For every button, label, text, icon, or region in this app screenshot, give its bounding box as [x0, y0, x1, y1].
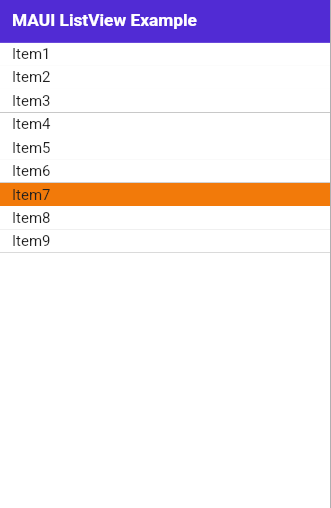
staticText: Item9	[12, 232, 51, 250]
button[interactable]: MAUI ListView Example	[0, 0, 330, 43]
staticText: Item5	[12, 139, 51, 157]
staticText: Item6	[12, 162, 51, 180]
staticText: Item8	[12, 209, 51, 227]
button[interactable]: Item8	[0, 207, 330, 229]
staticText: Item3	[12, 92, 51, 110]
staticText: Item2	[12, 68, 51, 86]
staticText: MAUI ListView Example	[12, 10, 197, 30]
button[interactable]: Item5	[0, 136, 330, 159]
button[interactable]: Item1	[0, 43, 330, 65]
staticText: Item7	[12, 186, 51, 204]
staticText: Item1	[12, 45, 51, 63]
button[interactable]: Item7	[0, 183, 330, 206]
button[interactable]: Item9	[0, 230, 330, 252]
button[interactable]: Item2	[0, 66, 330, 88]
button[interactable]: Item3	[0, 89, 330, 112]
button[interactable]: Item4	[0, 113, 330, 135]
button[interactable]: Item6	[0, 160, 330, 182]
staticText: Item4	[12, 115, 51, 133]
